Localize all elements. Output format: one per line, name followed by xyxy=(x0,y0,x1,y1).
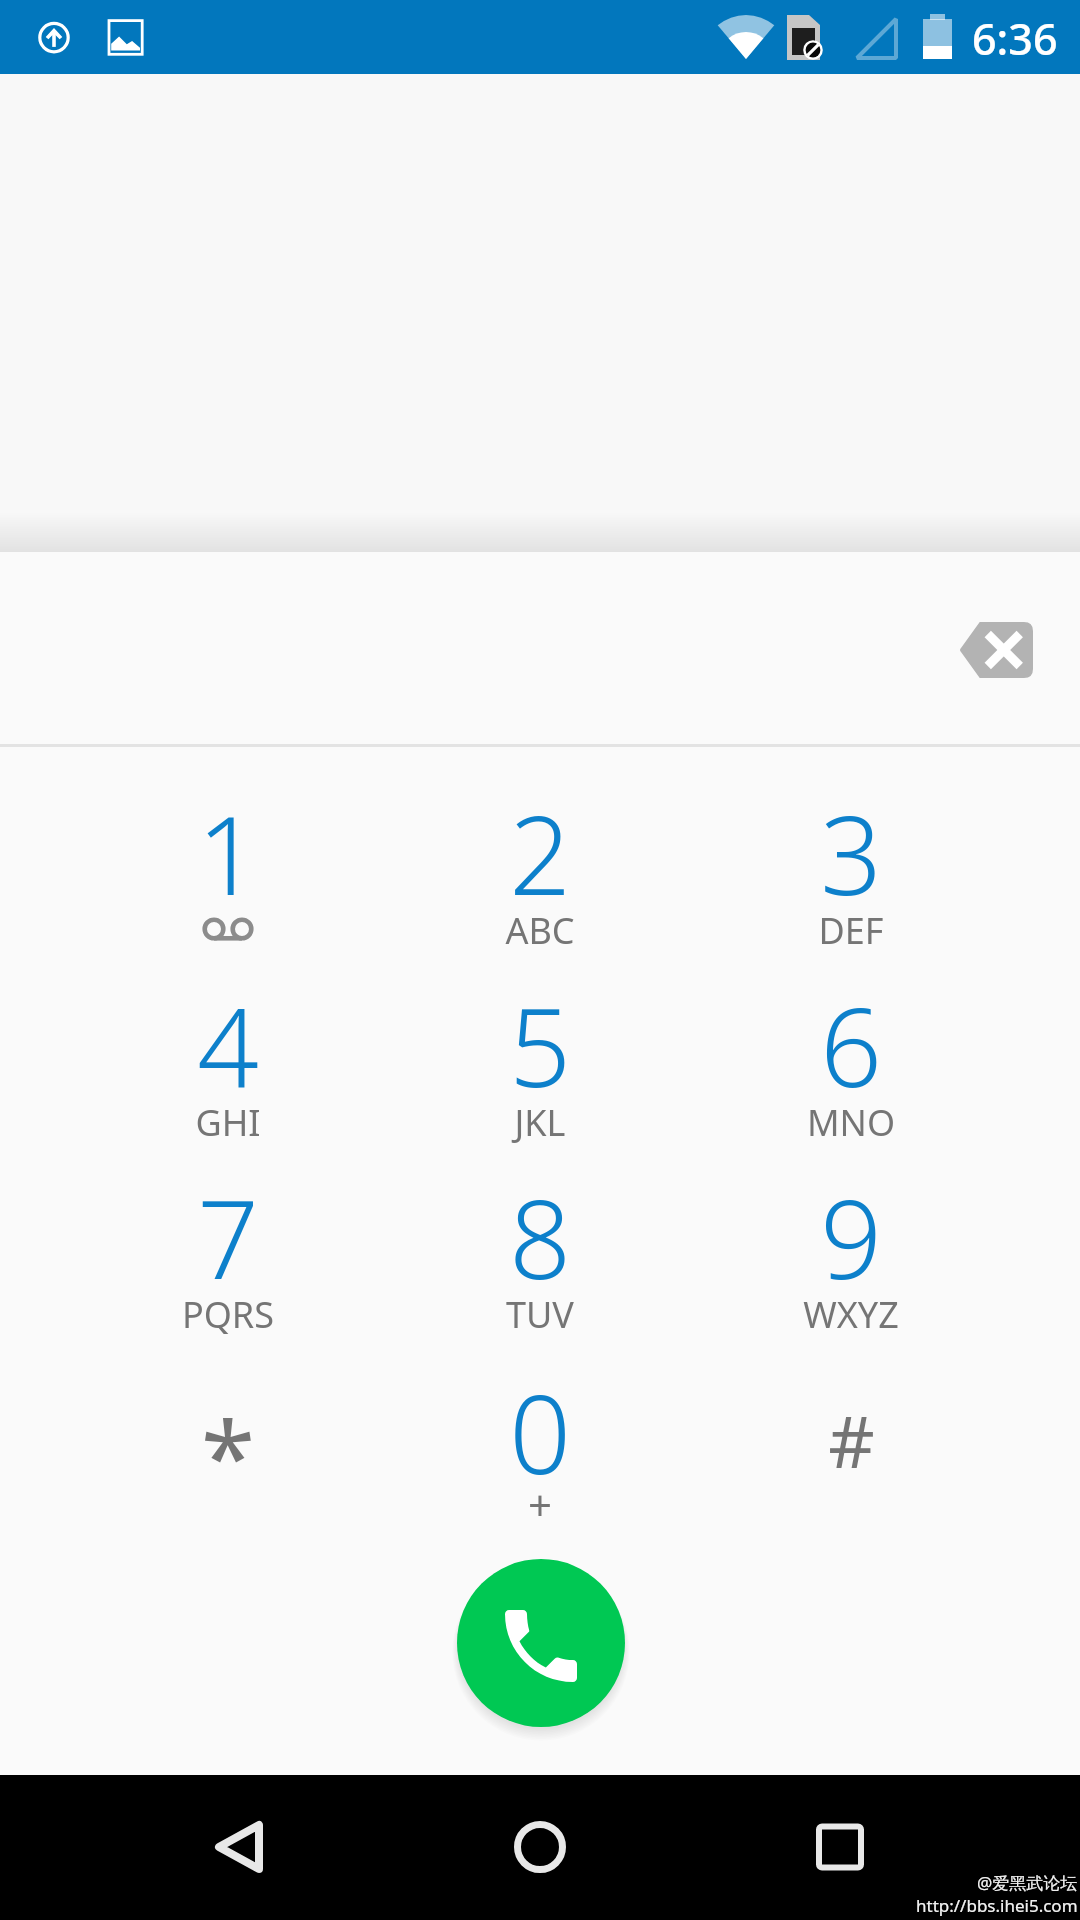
button[interactable]: Delete xyxy=(936,590,1056,710)
staticText: @爱黑武论坛 xyxy=(977,1871,1078,1894)
staticText: WXYZ xyxy=(701,1290,1001,1339)
staticText: TUV xyxy=(390,1290,690,1339)
staticText: ABC xyxy=(390,906,690,955)
staticText: 4 xyxy=(78,972,378,1119)
staticText: PQRS xyxy=(78,1290,378,1339)
staticText: 6:36 xyxy=(972,9,1058,68)
staticText: # xyxy=(828,1391,875,1489)
staticText: 1 xyxy=(78,780,378,927)
button[interactable]: 4 xyxy=(78,972,378,1164)
staticText: 6 xyxy=(701,972,1001,1119)
button[interactable]: 9 xyxy=(701,1164,1001,1356)
staticText: 3 xyxy=(701,780,1001,927)
staticText: 2 xyxy=(390,780,690,927)
staticText: 9 xyxy=(701,1164,1001,1311)
button[interactable]: 7 xyxy=(78,1164,378,1356)
button[interactable]: 3 xyxy=(701,780,1001,972)
button[interactable]: Call xyxy=(457,1559,625,1727)
staticText: GHI xyxy=(78,1098,378,1147)
staticText: 0 xyxy=(390,1359,690,1506)
staticText: http://bbs.ihei5.com xyxy=(916,1894,1078,1917)
staticText: MNO xyxy=(701,1098,1001,1147)
staticText: 8 xyxy=(390,1164,690,1311)
staticText: DEF xyxy=(701,906,1001,955)
staticText: + xyxy=(390,1476,690,1533)
button[interactable]: 2 xyxy=(390,780,690,972)
button[interactable]: * xyxy=(78,1358,378,1550)
staticText: 5 xyxy=(390,972,690,1119)
button[interactable]: 5 xyxy=(390,972,690,1164)
staticText: JKL xyxy=(390,1098,690,1147)
staticText: * xyxy=(201,1388,255,1521)
button[interactable]: 1 xyxy=(78,780,378,972)
button[interactable]: 6 xyxy=(701,972,1001,1164)
button[interactable]: 8 xyxy=(390,1164,690,1356)
button[interactable]: 0 xyxy=(390,1359,690,1551)
staticText: 7 xyxy=(78,1164,378,1311)
button[interactable]: # xyxy=(701,1344,1001,1536)
